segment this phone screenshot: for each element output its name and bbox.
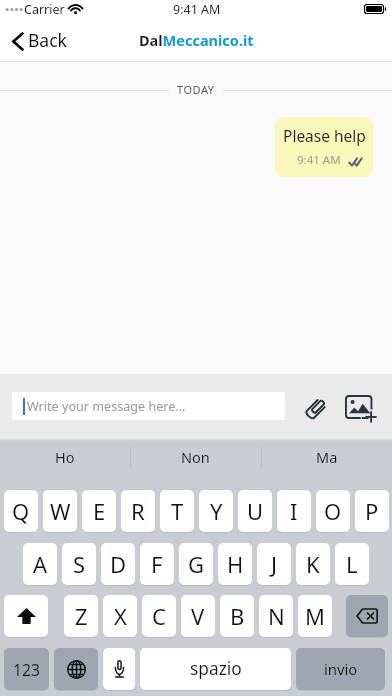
button[interactable] <box>103 648 135 690</box>
button[interactable]: Please help <box>275 117 373 177</box>
staticText: W <box>50 496 71 526</box>
staticText: Y <box>210 496 223 526</box>
button[interactable]: D <box>101 543 135 585</box>
staticText: DalMeccanico.it <box>139 30 254 50</box>
staticText: J <box>271 549 278 579</box>
button[interactable]: 123 <box>4 648 49 690</box>
button[interactable]: M <box>298 595 332 637</box>
button[interactable] <box>54 648 98 690</box>
staticText: Write your message here... <box>27 398 186 415</box>
staticText: Z <box>75 601 88 631</box>
staticText: M <box>305 601 325 631</box>
button[interactable]: Attach file <box>304 398 328 422</box>
staticText: spazio <box>190 657 242 681</box>
staticText: Ho <box>55 447 75 467</box>
staticText: 9:41 AM <box>173 1 221 18</box>
staticText: Please help <box>283 125 366 146</box>
staticText: U <box>247 496 264 526</box>
button[interactable]: L <box>335 543 369 585</box>
button[interactable]: O <box>316 490 350 532</box>
button[interactable]: Write your message here... <box>12 392 285 420</box>
button[interactable]: K <box>296 543 330 585</box>
button[interactable]: U <box>238 490 272 532</box>
staticText: invio <box>324 659 358 679</box>
button[interactable]: spazio <box>140 648 291 690</box>
button[interactable]: B <box>220 595 254 637</box>
staticText: E <box>93 496 106 526</box>
button[interactable]: G <box>179 543 213 585</box>
staticText: 9:41 AM <box>297 152 341 168</box>
staticText: B <box>230 601 245 631</box>
staticText: T <box>171 496 184 526</box>
button[interactable]: H <box>218 543 252 585</box>
staticText: Carrier <box>24 1 65 18</box>
button[interactable]: Back <box>11 29 67 53</box>
button[interactable] <box>346 595 388 637</box>
staticText: H <box>227 549 244 579</box>
button[interactable]: I <box>277 490 311 532</box>
button[interactable] <box>4 595 48 637</box>
button[interactable]: Z <box>64 595 98 637</box>
staticText: K <box>306 549 320 579</box>
staticText: R <box>131 496 145 526</box>
button[interactable]: R <box>121 490 155 532</box>
button[interactable]: W <box>43 490 77 532</box>
button[interactable]: Y <box>199 490 233 532</box>
staticText: L <box>346 549 358 579</box>
staticText: O <box>324 496 342 526</box>
button[interactable]: Non <box>130 438 261 476</box>
staticText: C <box>152 601 166 631</box>
staticText: X <box>114 601 127 631</box>
button[interactable]: S <box>62 543 96 585</box>
button[interactable]: invio <box>296 648 385 690</box>
button[interactable]: Add photo <box>345 395 377 419</box>
button[interactable]: Q <box>4 490 38 532</box>
staticText: G <box>188 549 205 579</box>
button[interactable]: X <box>103 595 137 637</box>
staticText: Ma <box>316 447 338 467</box>
button[interactable]: T <box>160 490 194 532</box>
staticText: S <box>73 549 86 579</box>
button[interactable]: C <box>142 595 176 637</box>
button[interactable]: F <box>140 543 174 585</box>
button[interactable]: Ho <box>0 438 130 476</box>
staticText: I <box>290 496 298 526</box>
staticText: Non <box>181 447 210 467</box>
button[interactable]: N <box>259 595 293 637</box>
staticText: D <box>110 549 127 579</box>
staticText: V <box>191 601 205 631</box>
button[interactable]: J <box>257 543 291 585</box>
staticText: N <box>268 601 285 631</box>
button[interactable]: A <box>23 543 57 585</box>
button[interactable]: P <box>355 490 389 532</box>
staticText: TODAY <box>177 82 215 97</box>
staticText: Back <box>28 28 67 52</box>
staticText: P <box>365 496 379 526</box>
staticText: A <box>33 549 48 579</box>
button[interactable]: Ma <box>261 438 392 476</box>
staticText: F <box>151 549 163 579</box>
button[interactable]: V <box>181 595 215 637</box>
staticText: 123 <box>13 659 40 680</box>
button[interactable]: E <box>82 490 116 532</box>
staticText: Q <box>12 496 30 526</box>
